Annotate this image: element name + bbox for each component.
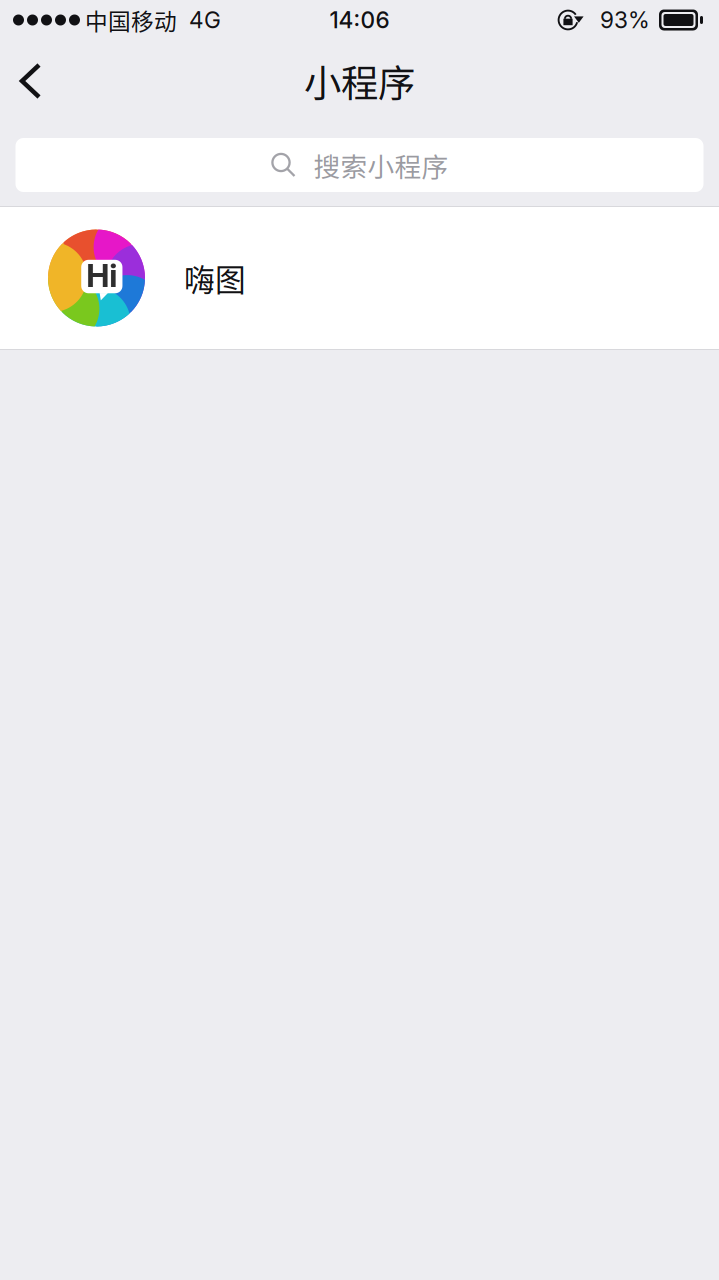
button[interactable]: 搜索小程序 xyxy=(15,138,703,192)
staticText: 14:06 xyxy=(329,6,389,34)
staticText: 中国移动 xyxy=(85,4,177,36)
button[interactable]: Back xyxy=(0,51,62,111)
staticText: Hi xyxy=(86,256,117,294)
staticText: 搜索小程序 xyxy=(313,146,448,184)
button[interactable]: Hi xyxy=(0,207,719,349)
staticText: 小程序 xyxy=(304,54,415,108)
staticText: 93% xyxy=(600,6,650,34)
staticText: 4G xyxy=(189,6,221,34)
staticText: 嗨图 xyxy=(184,256,246,300)
